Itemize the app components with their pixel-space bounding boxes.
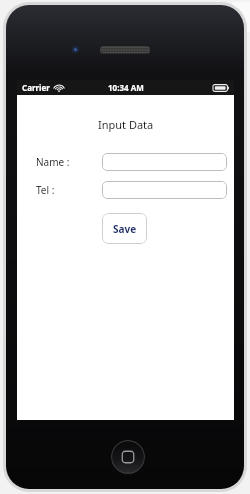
button[interactable]: Name : [102, 153, 227, 171]
staticText: Carrier [22, 82, 50, 93]
staticText: Name : [36, 155, 70, 169]
button[interactable]: Save [102, 213, 147, 244]
button[interactable]: Home [111, 440, 145, 474]
staticText: Input Data [98, 117, 154, 132]
button[interactable]: Tel : [102, 181, 227, 199]
staticText: Tel : [36, 183, 55, 197]
staticText: 10:34 AM [108, 82, 144, 93]
staticText: Save [113, 222, 137, 236]
